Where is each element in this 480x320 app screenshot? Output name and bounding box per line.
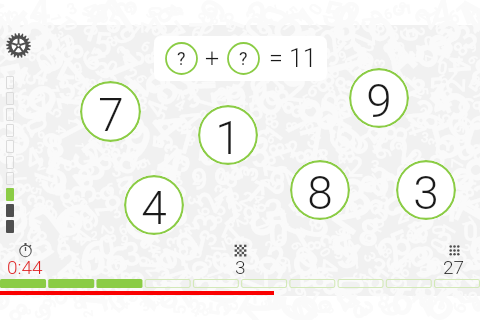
staticText: 3 [235, 256, 246, 278]
staticText: 0:44 [7, 256, 43, 278]
staticText: 4 [141, 181, 167, 235]
staticText: ? [239, 48, 248, 69]
staticText: = 11 [269, 44, 317, 73]
button[interactable]: 1 [198, 105, 258, 165]
staticText: 1 [215, 111, 241, 165]
button[interactable]: 9 [349, 68, 409, 128]
staticText: 7 [98, 88, 124, 142]
staticText: 9 [366, 74, 392, 128]
button[interactable]: Settings [4, 31, 33, 60]
button[interactable]: 4 [124, 175, 184, 235]
button[interactable]: 8 [290, 160, 350, 220]
button[interactable]: 7 [80, 81, 141, 142]
staticText: ? [177, 48, 186, 69]
button[interactable]: 3 [396, 160, 456, 220]
staticText: 3 [413, 166, 439, 220]
staticText: 27 [443, 256, 465, 278]
staticText: + [205, 44, 220, 73]
staticText: 8 [307, 166, 333, 220]
button[interactable]: ? [154, 36, 327, 81]
